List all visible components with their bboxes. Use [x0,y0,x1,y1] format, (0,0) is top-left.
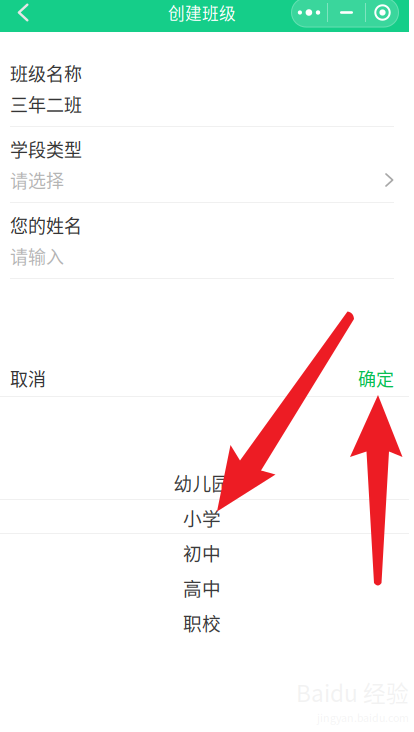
staticText: 三年二班 [10,91,82,117]
staticText: 小学 [183,504,221,531]
staticText: 高中 [183,574,221,601]
staticText: 请输入 [10,243,64,269]
staticText: jingyan.baidu.com [317,710,409,725]
button[interactable]: 确定 [279,352,409,396]
staticText: 创建班级 [168,0,236,24]
staticText: 职校 [183,609,221,636]
button[interactable]: 取消 [0,352,125,396]
staticText: 初中 [183,539,221,566]
staticText: Baidu 经验 [296,676,409,708]
button[interactable]: Menu [291,0,399,27]
staticText: 取消 [10,365,46,391]
staticText: 幼儿园 [173,469,230,496]
button[interactable]: Back [0,0,46,32]
staticText: 您的姓名 [10,212,82,238]
staticText: 学段类型 [10,136,82,162]
staticText: 班级名称 [10,60,82,86]
staticText: 确定 [358,365,394,391]
button[interactable]: 学段类型 [0,127,409,202]
staticText: 请选择 [10,167,64,193]
